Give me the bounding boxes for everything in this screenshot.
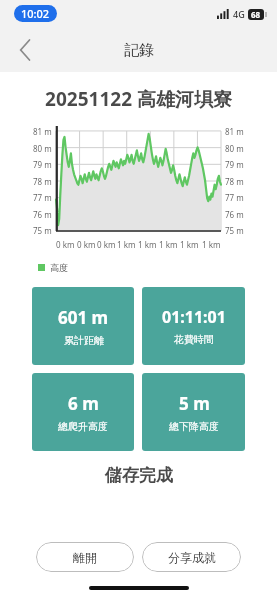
staticText: 0 km — [56, 239, 75, 250]
staticText: 1 km — [180, 239, 199, 250]
staticText: 累計距離 — [64, 334, 104, 347]
staticText: 81 m — [225, 126, 244, 137]
staticText: 20251122 高雄河埧寮 — [45, 86, 232, 112]
staticText: 0 km — [97, 239, 116, 250]
staticText: 76 m — [33, 209, 52, 220]
staticText: 75 m — [225, 225, 244, 236]
staticText: 分享成就 — [168, 550, 216, 565]
button[interactable]: 01:11:01 — [142, 287, 245, 365]
staticText: 1 km — [202, 239, 221, 250]
staticText: 75 m — [33, 225, 52, 236]
staticText: 記錄 — [124, 41, 154, 60]
button[interactable]: 分享成就 — [142, 542, 241, 572]
staticText: 79 m — [33, 159, 52, 170]
staticText: 1 km — [159, 239, 178, 250]
staticText: 高度 — [50, 262, 68, 273]
staticText: 80 m — [225, 143, 244, 154]
staticText: 68 — [251, 9, 261, 20]
staticText: 79 m — [225, 159, 244, 170]
staticText: 78 m — [33, 176, 52, 187]
button[interactable]: Back — [6, 30, 46, 70]
staticText: 81 m — [33, 126, 52, 137]
staticText: 離開 — [73, 550, 97, 565]
staticText: 儲存完成 — [105, 465, 173, 486]
button[interactable]: 6 m — [32, 373, 134, 451]
staticText: 01:11:01 — [162, 306, 226, 328]
staticText: 78 m — [225, 176, 244, 187]
staticText: 601 m — [58, 306, 109, 329]
staticText: 總爬升高度 — [58, 420, 108, 433]
button[interactable]: 601 m — [32, 287, 134, 365]
staticText: 76 m — [225, 209, 244, 220]
staticText: 0 km — [77, 239, 96, 250]
staticText: 6 m — [68, 392, 99, 415]
button[interactable]: 離開 — [36, 542, 134, 572]
staticText: 1 km — [138, 239, 157, 250]
staticText: 總下降高度 — [169, 420, 219, 433]
staticText: 4G — [233, 8, 245, 20]
button[interactable]: 5 m — [142, 373, 245, 451]
staticText: 10:02 — [21, 6, 50, 21]
staticText: 77 m — [33, 192, 52, 203]
staticText: 80 m — [33, 143, 52, 154]
staticText: 5 m — [179, 392, 210, 415]
staticText: 花費時間 — [174, 333, 214, 346]
staticText: 1 km — [117, 239, 136, 250]
staticText: 77 m — [225, 192, 244, 203]
